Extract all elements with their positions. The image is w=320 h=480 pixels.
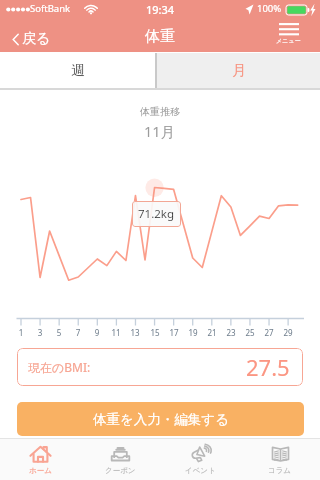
staticText: 27 bbox=[259, 327, 279, 338]
staticText: 11月 bbox=[144, 121, 176, 141]
staticText: 体重 bbox=[145, 27, 175, 46]
staticText: SoftBank bbox=[30, 2, 71, 15]
staticText: 25 bbox=[240, 327, 260, 338]
staticText: 1 bbox=[11, 327, 31, 338]
button[interactable]: 週 bbox=[0, 53, 155, 88]
staticText: コラム bbox=[268, 466, 292, 475]
staticText: メニュー bbox=[276, 37, 301, 45]
button[interactable]: 体重を入力・編集する bbox=[17, 402, 304, 436]
staticText: 現在のBMI: bbox=[28, 359, 91, 375]
staticText: 21 bbox=[202, 327, 222, 338]
staticText: 11 bbox=[106, 327, 126, 338]
staticText: 体重推移 bbox=[140, 105, 180, 118]
staticText: 体重を入力・編集する bbox=[93, 411, 229, 428]
staticText: 17 bbox=[164, 327, 184, 338]
button[interactable]: 戻る bbox=[0, 26, 61, 52]
staticText: 23 bbox=[221, 327, 241, 338]
staticText: 27.5 bbox=[246, 352, 290, 382]
staticText: 100% bbox=[257, 2, 282, 15]
staticText: 9 bbox=[87, 327, 107, 338]
staticText: 週 bbox=[71, 62, 85, 80]
staticText: イベント bbox=[185, 466, 216, 475]
staticText: 71.2kg bbox=[138, 206, 175, 222]
staticText: 3 bbox=[30, 327, 50, 338]
button[interactable]: 現在のBMI: bbox=[17, 348, 303, 386]
staticText: 19:34 bbox=[0, 2, 320, 17]
button[interactable]: 月 bbox=[157, 53, 320, 88]
button[interactable]: ホーム bbox=[0, 439, 80, 480]
staticText: 戻る bbox=[22, 30, 51, 48]
button[interactable]: コラム bbox=[240, 439, 320, 480]
staticText: 19 bbox=[183, 327, 203, 338]
staticText: 月 bbox=[232, 62, 246, 80]
button[interactable]: クーポン bbox=[80, 439, 160, 480]
staticText: クーポン bbox=[105, 466, 136, 475]
button[interactable]: メニュー bbox=[266, 21, 320, 47]
staticText: 15 bbox=[145, 327, 165, 338]
staticText: 7 bbox=[68, 327, 88, 338]
staticText: 13 bbox=[125, 327, 145, 338]
staticText: ホーム bbox=[29, 466, 52, 475]
staticText: 5 bbox=[49, 327, 69, 338]
staticText: 29 bbox=[278, 327, 298, 338]
button[interactable]: イベント bbox=[160, 439, 240, 480]
